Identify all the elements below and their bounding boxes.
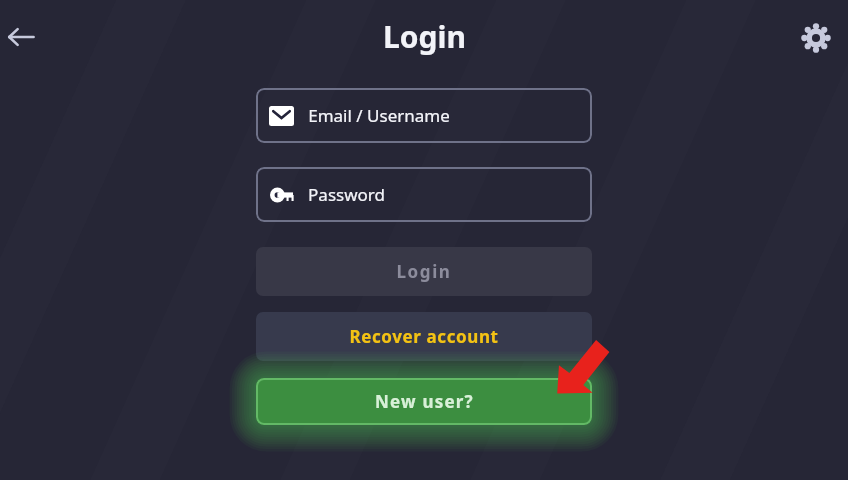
button[interactable]: Login (256, 247, 592, 296)
staticText: Login (396, 260, 452, 283)
staticText: New user? (375, 390, 474, 413)
staticText: Recover account (349, 325, 499, 348)
button[interactable]: Email / Username (256, 88, 592, 143)
button[interactable]: Back (2, 18, 40, 56)
staticText: Password (308, 183, 385, 206)
button[interactable]: Settings (796, 18, 836, 58)
staticText: Email / Username (308, 104, 450, 127)
button[interactable]: Password (256, 167, 592, 222)
staticText: Login (383, 16, 466, 57)
button[interactable]: Recover account (256, 312, 592, 361)
button[interactable]: New user? (256, 378, 592, 425)
